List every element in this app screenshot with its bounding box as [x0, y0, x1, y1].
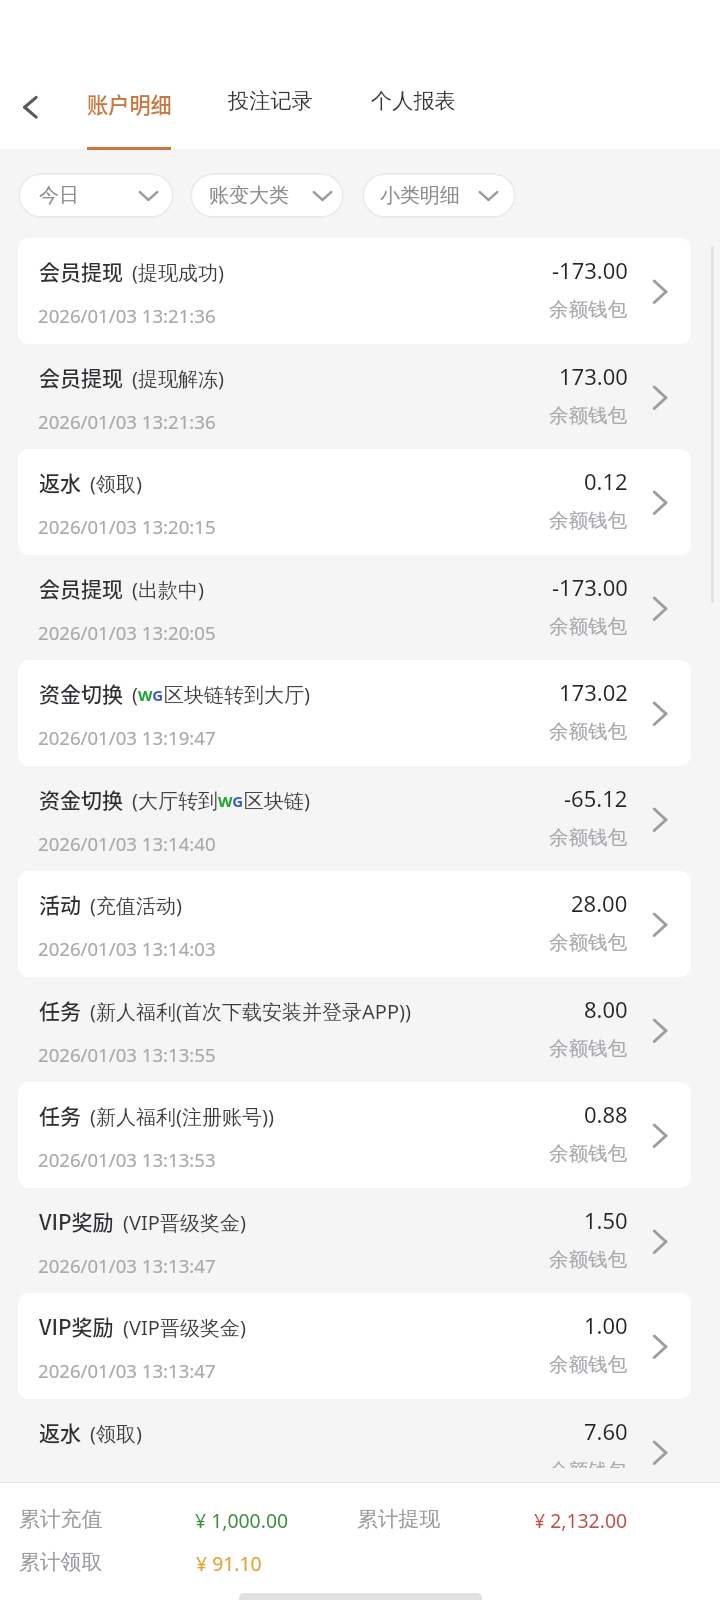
staticText: 累计提现 — [357, 1506, 441, 1532]
staticText: 余额钱包 — [549, 1141, 627, 1166]
staticText: 28.00 — [571, 888, 628, 918]
staticText: 区块链) — [244, 787, 310, 814]
staticText: (VIP晋级奖金) — [123, 1314, 246, 1341]
button[interactable]: 资金切换 — [0, 660, 720, 766]
button[interactable]: 会员提现 — [0, 238, 720, 344]
button[interactable]: 小类明细 — [362, 173, 516, 218]
staticText: 余额钱包 — [549, 719, 627, 744]
staticText: 173.02 — [559, 677, 628, 707]
staticText: (大厅转到 — [132, 787, 218, 814]
button[interactable]: 返水 — [0, 1399, 720, 1468]
staticText: 投注记录 — [228, 88, 313, 115]
staticText: 资金切换 — [39, 678, 123, 708]
staticText: 会员提现 — [39, 573, 123, 603]
staticText: -173.00 — [552, 572, 628, 602]
staticText: 资金切换 — [39, 784, 123, 814]
staticText: 返水 — [39, 1417, 81, 1447]
staticText: 累计充值 — [19, 1506, 103, 1532]
staticText: 任务 — [39, 1100, 81, 1130]
staticText: 会员提现 — [39, 256, 123, 286]
button[interactable]: VIP奖励 — [0, 1293, 720, 1399]
staticText: 区块链转到大厅) — [164, 681, 310, 708]
staticText: 小类明细 — [380, 183, 460, 208]
staticText: (VIP晋级奖金) — [123, 1209, 246, 1236]
button[interactable]: 任务 — [0, 1082, 720, 1188]
staticText: 2026/01/03 13:21:36 — [38, 409, 216, 434]
staticText: 8.00 — [584, 994, 628, 1024]
staticText: 余额钱包 — [549, 1352, 627, 1377]
staticText: 账户明细 — [87, 88, 172, 119]
button[interactable]: 今日 — [18, 173, 174, 218]
staticText: (领取) — [90, 470, 142, 497]
staticText: 余额钱包 — [549, 614, 627, 639]
button[interactable]: 会员提现 — [0, 344, 720, 450]
staticText: 2026/01/03 13:13:47 — [38, 1253, 216, 1278]
staticText: 2026/01/03 13:14:03 — [38, 936, 216, 961]
button[interactable]: 个人报表 — [351, 76, 475, 149]
staticText: 余额钱包 — [549, 508, 627, 533]
button[interactable]: 返水 — [0, 449, 720, 555]
staticText: 1.50 — [584, 1205, 628, 1235]
staticText: 会员提现 — [39, 362, 123, 392]
staticText: 余额钱包 — [549, 930, 627, 955]
staticText: 个人报表 — [371, 88, 456, 115]
staticText: 2026/01/03 13:20:05 — [38, 620, 216, 645]
staticText: ( — [132, 681, 138, 708]
staticText: VIP奖励 — [39, 1206, 114, 1236]
staticText: 2026/01/03 13:13:53 — [38, 1147, 216, 1172]
button[interactable]: 账变大类 — [190, 173, 344, 218]
staticText: (新人福利(首次下载安装并登录APP)) — [90, 998, 411, 1025]
staticText: 余额钱包 — [549, 297, 627, 322]
staticText: 活动 — [39, 889, 81, 919]
staticText: 1.00 — [584, 1310, 628, 1340]
staticText: -65.12 — [564, 783, 628, 813]
staticText: ¥ 91.10 — [196, 1550, 262, 1576]
staticText: 173.00 — [559, 361, 628, 391]
staticText: -173.00 — [552, 255, 628, 285]
staticText: 2026/01/03 13:19:47 — [38, 725, 216, 750]
staticText: 0.12 — [584, 466, 628, 496]
staticText: 余额钱包 — [549, 1458, 627, 1468]
button[interactable]: 投注记录 — [208, 76, 332, 149]
staticText: 今日 — [39, 183, 79, 208]
staticText: (出款中) — [132, 576, 204, 603]
staticText: WG — [218, 791, 244, 811]
staticText: (提现成功) — [132, 259, 224, 286]
staticText: ¥ 2,132.00 — [534, 1507, 628, 1533]
staticText: 余额钱包 — [549, 403, 627, 428]
button[interactable]: 任务 — [0, 977, 720, 1083]
staticText: (领取) — [90, 1420, 142, 1447]
staticText: 2026/01/03 13:13:47 — [38, 1358, 216, 1383]
staticText: 7.60 — [584, 1416, 628, 1446]
staticText: 余额钱包 — [549, 825, 627, 850]
staticText: 2026/01/03 13:13:55 — [38, 1042, 216, 1067]
button[interactable]: 活动 — [0, 871, 720, 977]
staticText: 余额钱包 — [549, 1247, 627, 1272]
button[interactable]: 资金切换 — [0, 766, 720, 872]
staticText: 2026/01/03 13:21:36 — [38, 303, 216, 328]
staticText: 账变大类 — [209, 183, 289, 208]
staticText: 任务 — [39, 995, 81, 1025]
staticText: 2026/01/03 13:14:40 — [38, 831, 216, 856]
staticText: (新人福利(注册账号)) — [90, 1103, 274, 1130]
button[interactable]: 账户明细 — [67, 76, 191, 149]
staticText: (提现解冻) — [132, 365, 224, 392]
button[interactable]: 会员提现 — [0, 555, 720, 661]
staticText: VIP奖励 — [39, 1311, 114, 1341]
button[interactable]: Back — [4, 82, 56, 134]
staticText: 返水 — [39, 467, 81, 497]
staticText: 累计领取 — [19, 1549, 103, 1575]
staticText: 0.88 — [584, 1099, 628, 1129]
staticText: (充值活动) — [90, 892, 182, 919]
staticText: WG — [138, 685, 164, 705]
button[interactable]: VIP奖励 — [0, 1188, 720, 1294]
staticText: 余额钱包 — [549, 1036, 627, 1061]
staticText: 2026/01/03 13:20:15 — [38, 514, 216, 539]
staticText: ¥ 1,000.00 — [195, 1507, 289, 1533]
